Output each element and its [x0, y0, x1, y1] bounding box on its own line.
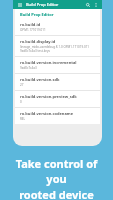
button[interactable]: ro.build.version.preview_sdk: [15, 91, 100, 107]
staticText: lineage_mido-userdebug 8.1.0 OPM1.171019…: [20, 45, 95, 53]
staticText: 27: [20, 83, 24, 87]
staticText: ro.build.id: [20, 22, 41, 27]
staticText: 0: [20, 100, 22, 104]
button[interactable]: ro.build.version.sdk: [15, 74, 100, 90]
button[interactable]: ro.build.version.incremental: [15, 57, 100, 73]
staticText: 9ad0c7c4a3: [20, 66, 37, 70]
staticText: rooted device: [19, 187, 94, 200]
button[interactable]: ro.build.version.codename: [15, 108, 100, 124]
staticText: REL: [20, 117, 26, 121]
button[interactable]: ro.build.display.id: [15, 36, 100, 56]
button[interactable]: Menu: [16, 1, 23, 8]
staticText: ro.build.version.incremental: [20, 60, 77, 65]
staticText: OPM1.171019.011: [20, 28, 46, 32]
staticText: ro.build.version.preview_sdk: [20, 94, 77, 99]
staticText: ro.build.version.sdk: [20, 77, 60, 82]
button[interactable]: More options: [92, 1, 99, 8]
staticText: Build Prop Editor: [26, 2, 59, 7]
button[interactable]: Search: [84, 1, 91, 8]
button[interactable]: ro.build.id: [15, 19, 100, 35]
staticText: Take control of you: [6, 156, 107, 186]
staticText: ro.build.display.id: [20, 39, 56, 44]
staticText: Build Prop Editor: [20, 12, 54, 17]
staticText: ro.build.version.codename: [20, 111, 74, 116]
